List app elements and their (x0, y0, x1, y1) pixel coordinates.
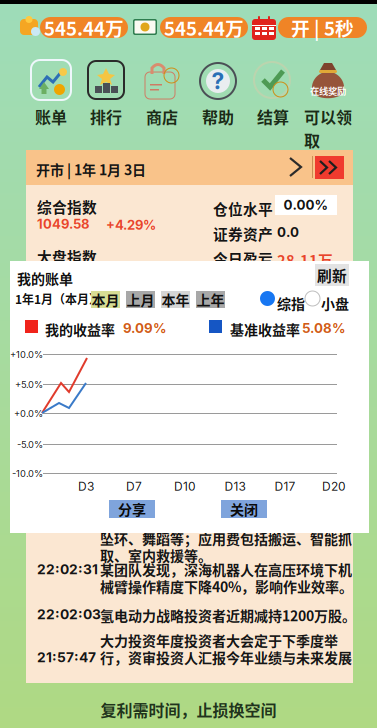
button[interactable]: 上年 (196, 291, 225, 308)
staticText: 排行 (90, 105, 122, 128)
staticText: 本年 (161, 289, 189, 310)
staticText: +5.0% (15, 379, 43, 390)
button[interactable]: 本年 (161, 291, 190, 308)
staticText: 取、室内救援等。 (100, 545, 212, 565)
staticText: 5.08% (302, 320, 346, 336)
staticText: 545.44万 (44, 14, 124, 41)
staticText: 可以领取 (304, 105, 352, 151)
staticText: +4.29% (106, 217, 156, 233)
staticText: 本月 (91, 289, 119, 310)
staticText: 结算 (257, 105, 289, 128)
staticText: 综指 (277, 293, 305, 313)
staticText: 商店 (146, 105, 178, 128)
staticText: 1年1月（本月） (15, 290, 101, 307)
button[interactable]: 下一步 (285, 154, 311, 180)
staticText: 复利需时间，止损换空间 (100, 698, 276, 721)
staticText: 开市 | 1年 1月 3日 (36, 159, 146, 179)
staticText: +0.0% (14, 408, 43, 419)
button[interactable]: 排行 (75, 60, 137, 128)
staticText: 上月 (126, 289, 154, 310)
staticText: 今日盈亏 (213, 248, 273, 269)
staticText: 小盘 (321, 293, 349, 313)
button[interactable]: 在线奖励 (297, 60, 359, 151)
staticText: 0.00% (283, 197, 328, 213)
staticText: D7 (126, 479, 142, 493)
staticText: D17 (274, 479, 295, 493)
staticText: 关闭 (230, 499, 258, 519)
staticText: -10.0% (12, 468, 43, 479)
button[interactable]: 商店 (131, 60, 193, 128)
staticText: 22:02:31 (37, 561, 98, 578)
staticText: 综合指数 (37, 196, 97, 217)
staticText: 在线奖励 (310, 84, 346, 97)
staticText: 我的收益率 (45, 319, 115, 339)
staticText: 9.09% (123, 320, 167, 336)
staticText: 行，资审投资人汇报今年业绩与未来发展 (100, 647, 352, 667)
staticText: 仓位水平 (213, 198, 273, 219)
staticText: 我的账单 (17, 268, 73, 288)
staticText: 账单 (35, 105, 67, 128)
staticText: 帮助 (202, 105, 234, 128)
staticText: 28.11万 (277, 249, 333, 270)
button[interactable]: ? (187, 60, 249, 128)
button[interactable]: 快进 (315, 156, 344, 179)
button[interactable]: 结算 (242, 60, 304, 128)
staticText: 基准收益率 (230, 319, 300, 339)
button[interactable]: 刷新 (315, 264, 349, 286)
staticText: 坠环、舞蹈等；应用费包括搬运、智能抓 (100, 528, 352, 548)
staticText: 分享 (118, 499, 146, 519)
staticText: 开 | 5秒 (291, 14, 354, 41)
staticText: 某团队发现，深海机器人在高压环境下机 (100, 559, 352, 579)
staticText: 氢电动力战略投资者近期减持1200万股。 (100, 605, 356, 625)
staticText: D3 (78, 479, 94, 493)
staticText: 刷新 (317, 264, 347, 286)
staticText: 1049.58 (37, 216, 90, 232)
staticText: 上年 (196, 289, 224, 310)
staticText: 大盘指数 (37, 246, 97, 267)
staticText: D20 (322, 479, 346, 493)
staticText: 证券资产 (213, 223, 273, 244)
staticText: 械臂操作精度下降40%，影响作业效率。 (100, 576, 353, 596)
button[interactable]: 关闭 (221, 500, 267, 518)
staticText: 545.44万 (164, 14, 244, 41)
staticText: -5.0% (17, 439, 43, 450)
staticText: ? (211, 67, 224, 95)
button[interactable]: 上月 (126, 291, 155, 308)
staticText: 0.0 (277, 224, 299, 240)
staticText: D13 (224, 479, 245, 493)
button[interactable]: 分享 (109, 500, 155, 518)
staticText: 22:02:03 (37, 606, 101, 623)
staticText: +10.0% (10, 349, 43, 360)
button[interactable]: 账单 (20, 60, 82, 128)
staticText: 大力投资年度投资者大会定于下季度举 (100, 630, 338, 650)
staticText: 21:57:47 (37, 649, 96, 666)
button[interactable]: 本月 (91, 291, 120, 308)
staticText: D10 (174, 479, 196, 493)
